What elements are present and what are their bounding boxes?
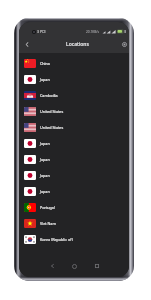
staticText: 20.1KB/s — [86, 30, 100, 34]
button[interactable]: Add location — [118, 38, 129, 51]
button[interactable]: Japan — [19, 151, 129, 167]
button[interactable]: Portugal — [19, 199, 129, 215]
staticText: Korea (Republic of) — [40, 237, 73, 242]
button[interactable]: Japan — [19, 71, 129, 87]
button[interactable]: United States — [19, 119, 129, 135]
button[interactable]: China — [19, 55, 129, 71]
staticText: Japan — [40, 77, 50, 82]
button[interactable]: Japan — [19, 183, 129, 199]
button[interactable]: Back — [20, 38, 33, 51]
button[interactable]: Viet Nam — [19, 215, 129, 231]
staticText: Japan — [40, 173, 50, 178]
button[interactable]: Back — [46, 260, 58, 272]
button[interactable]: Recent apps — [91, 260, 103, 272]
staticText: 3 PM — [37, 29, 46, 34]
staticText: Portugal — [40, 205, 55, 210]
staticText: Japan — [40, 157, 50, 162]
button[interactable]: Japan — [19, 167, 129, 183]
staticText: United States — [40, 109, 64, 114]
staticText: China — [40, 61, 50, 66]
staticText: Cambodia — [40, 93, 58, 98]
staticText: Viet Nam — [40, 221, 56, 226]
staticText: Japan — [40, 189, 50, 194]
button[interactable]: Korea (Republic of) — [19, 231, 129, 247]
staticText: Locations — [66, 41, 89, 48]
button[interactable]: Japan — [19, 135, 129, 151]
staticText: United States — [40, 125, 64, 130]
button[interactable]: Cambodia — [19, 87, 129, 103]
button[interactable]: United States — [19, 103, 129, 119]
button[interactable]: Home — [68, 260, 80, 272]
staticText: Japan — [40, 141, 50, 146]
